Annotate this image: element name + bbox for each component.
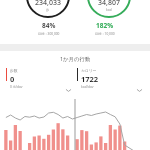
button[interactable]: 歩数 bbox=[6, 68, 73, 88]
staticText: 1722 bbox=[81, 74, 99, 84]
staticText: 84% bbox=[42, 21, 56, 30]
staticText: 目標：10,000 bbox=[95, 32, 115, 36]
staticText: kcal/day bbox=[81, 85, 94, 88]
staticText: 0 bbox=[10, 74, 15, 84]
staticText: 歩数 bbox=[10, 68, 18, 73]
staticText: 0 歩/day bbox=[10, 85, 23, 88]
staticText: kcal bbox=[106, 8, 112, 12]
staticText: 34,807 bbox=[98, 0, 120, 8]
staticText: 歩 bbox=[46, 8, 50, 12]
staticText: 1か月の行動 bbox=[60, 55, 91, 62]
staticText: 234,033 bbox=[35, 0, 61, 8]
button[interactable]: Expand bbox=[64, 86, 73, 95]
staticText: 182% bbox=[96, 21, 114, 30]
staticText: カロリー bbox=[81, 68, 97, 73]
button[interactable]: Expand bbox=[135, 86, 144, 95]
button[interactable]: カロリー bbox=[77, 68, 144, 88]
staticText: 目標：300,000 bbox=[38, 32, 60, 36]
